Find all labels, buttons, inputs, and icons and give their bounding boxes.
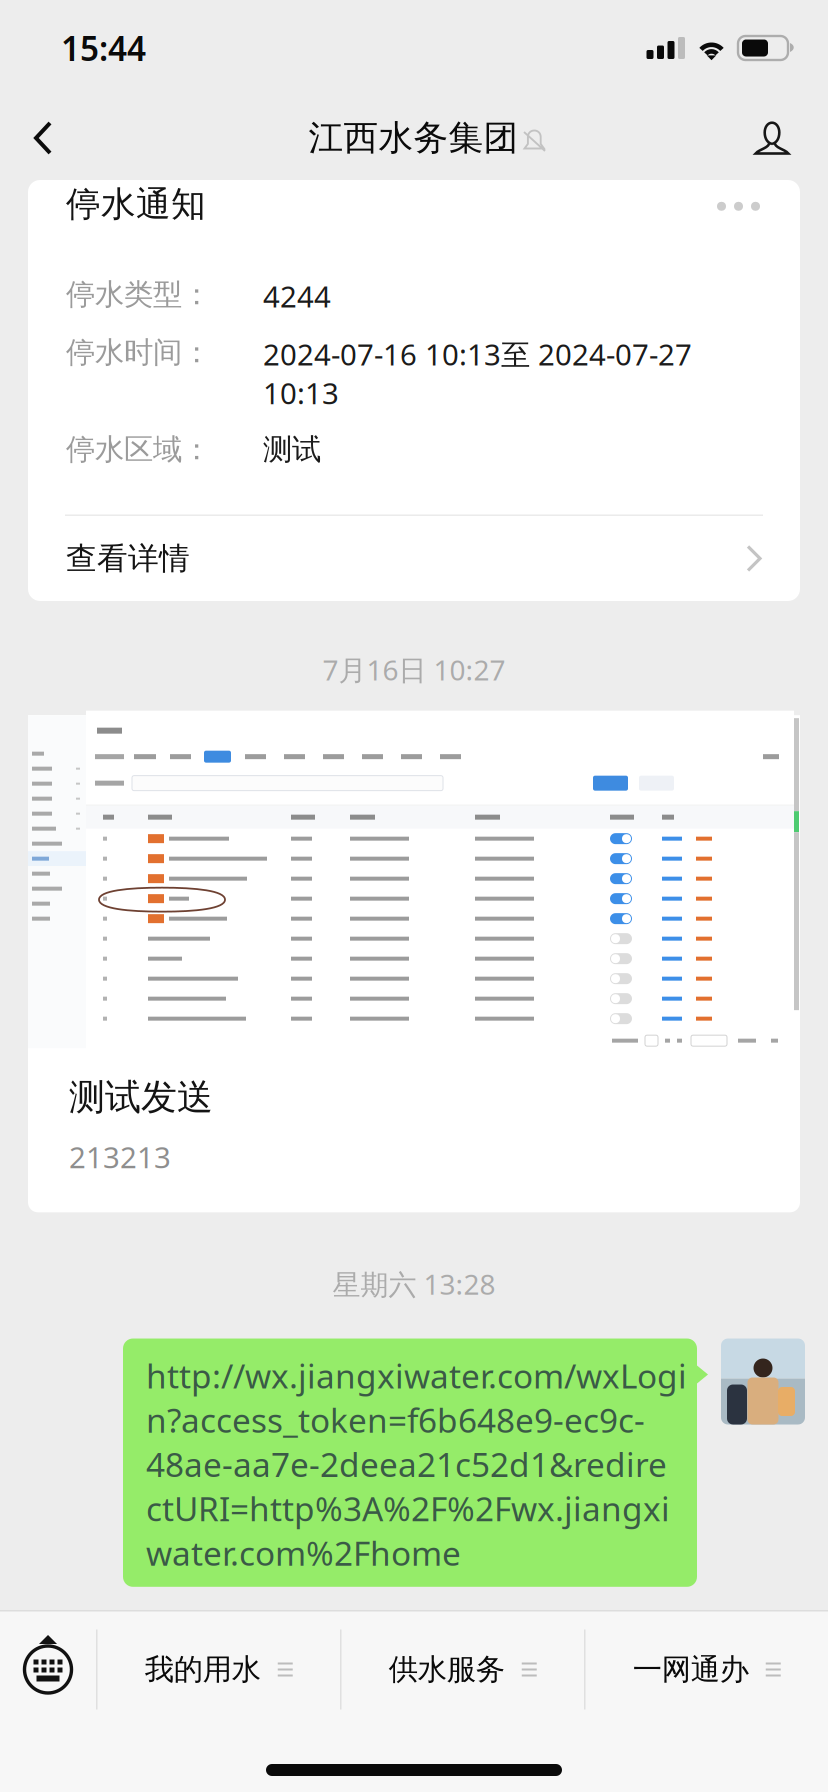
staticText: 供水服务 — [389, 1651, 505, 1687]
button[interactable]: Back — [0, 96, 86, 180]
button[interactable]: 查看详情 — [28, 516, 800, 601]
button[interactable]: 供水服务 — [341, 1611, 584, 1727]
staticText: 江西水务集团 — [308, 117, 518, 159]
staticText: 2024-07-16 10:13至 2024-07-27 10:13 — [263, 334, 692, 412]
staticText: 213213 — [69, 1137, 171, 1176]
staticText: 15:44 — [61, 26, 146, 70]
staticText: 4244 — [263, 277, 331, 316]
button[interactable]: 一网通办 — [585, 1611, 828, 1727]
button[interactable]: Contacts — [716, 96, 828, 180]
staticText: 星期六 13:28 — [332, 1265, 495, 1302]
staticText: http://wx.jiangxiwater.com/wxLogi n?acce… — [146, 1353, 687, 1575]
staticText: 测试发送 — [69, 1075, 213, 1119]
button[interactable]: Keyboard — [0, 1611, 96, 1727]
staticText: 测试 — [263, 431, 321, 467]
staticText: 停水时间： — [66, 334, 211, 370]
staticText: 停水类型： — [66, 277, 211, 313]
staticText: 一网通办 — [633, 1651, 749, 1687]
button[interactable]: 我的用水 — [97, 1611, 340, 1727]
staticText: 7月16日 10:27 — [322, 651, 505, 688]
staticText: 停水区域： — [66, 431, 211, 467]
staticText: 查看详情 — [66, 540, 190, 577]
staticText: 停水通知 — [66, 183, 206, 226]
staticText: 我的用水 — [145, 1651, 261, 1687]
